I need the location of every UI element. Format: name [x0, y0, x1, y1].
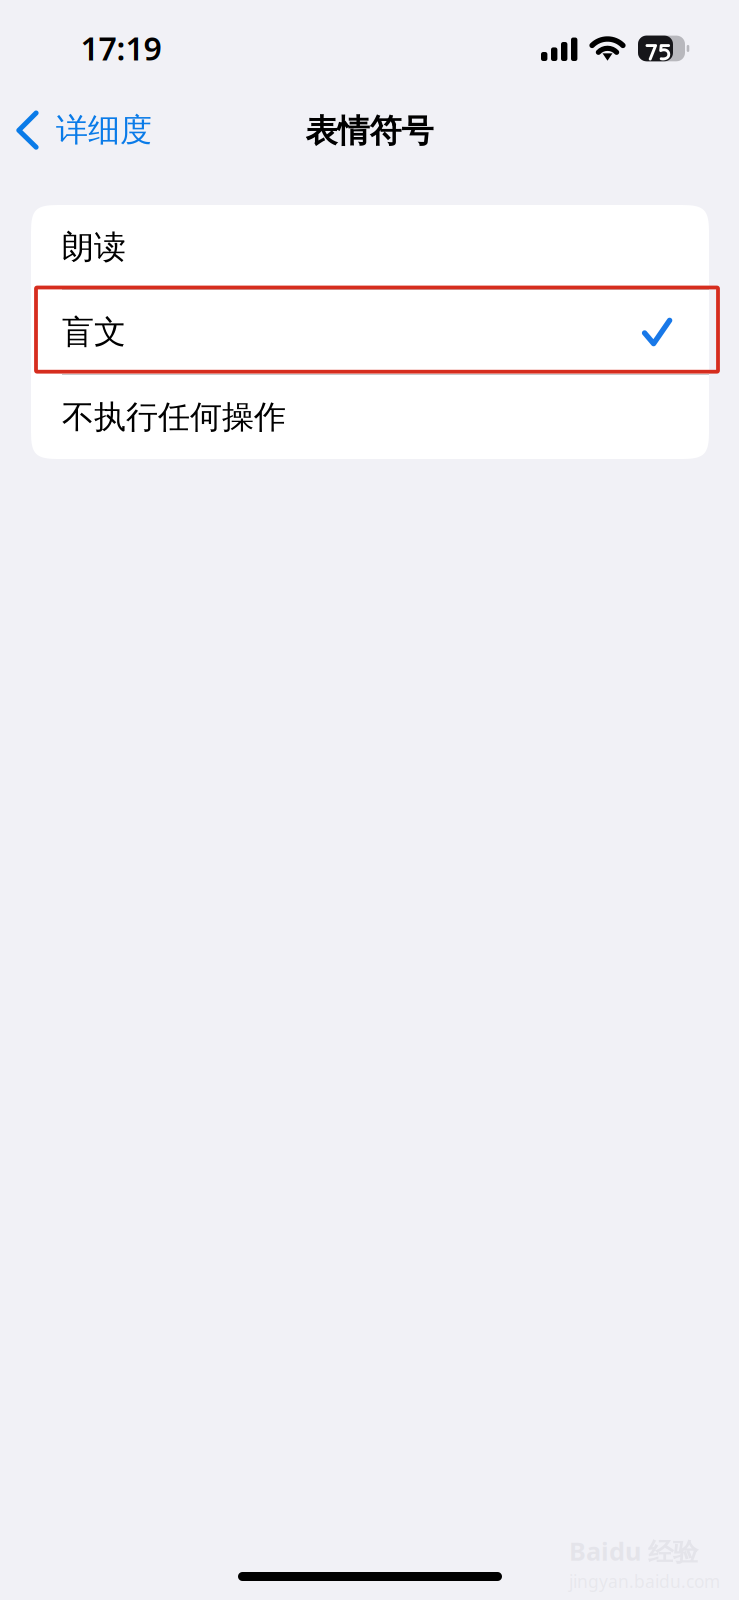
button[interactable]: 盲文: [31, 290, 709, 374]
staticText: jingyan.baidu.com: [569, 1570, 720, 1593]
staticText: 详细度: [56, 110, 152, 150]
button[interactable]: 详细度: [0, 102, 166, 158]
button[interactable]: 朗读: [31, 205, 709, 289]
button[interactable]: 不执行任何操作: [31, 375, 709, 459]
staticText: Baidu 经验: [569, 1534, 698, 1568]
staticText: 表情符号: [305, 111, 433, 151]
staticText: 朗读: [62, 227, 126, 267]
staticText: 17:19: [80, 27, 161, 69]
staticText: 不执行任何操作: [62, 397, 286, 437]
staticText: 盲文: [62, 312, 126, 352]
